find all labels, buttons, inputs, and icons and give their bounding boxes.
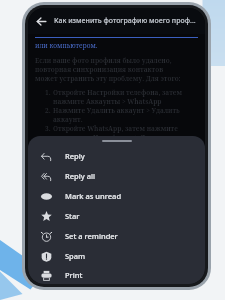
- staticText: Как изменить фотографию моего проф...: [54, 16, 199, 26]
- staticText: Нажмите Удалить аккаунт > Удалить: [53, 106, 180, 115]
- staticText: Если ваше фото профиля было удалено,: [35, 56, 172, 65]
- button[interactable]: Set a reminder: [28, 226, 205, 246]
- staticText: Reply: [65, 151, 85, 161]
- staticText: Print: [65, 270, 83, 280]
- staticText: 2.: [45, 106, 51, 115]
- staticText: на иконку «Новый чат» > Другие: [53, 133, 165, 142]
- staticText: аккаунт, сообщения, контакты: [67, 208, 170, 217]
- staticText: Star: [65, 211, 80, 221]
- staticText: Set a reminder: [65, 231, 118, 241]
- button[interactable]: или компьютером.: [35, 41, 98, 50]
- staticText: 3.: [45, 124, 51, 133]
- button[interactable]: Reply: [28, 146, 205, 166]
- staticText: операционной системы о том, что: [67, 172, 181, 181]
- staticText: Откройте Настройки телефона, затем: [53, 88, 183, 97]
- staticText: 1.: [45, 88, 51, 97]
- button[interactable]: Mark as unread: [28, 186, 205, 206]
- button[interactable]: Spam: [28, 246, 205, 266]
- staticText: Mark as unread: [65, 191, 122, 201]
- staticText: может устранить эту проблему. Для этого:: [35, 74, 181, 83]
- staticText: · Нажав Удалить аккаунт, вы,: [61, 154, 161, 163]
- staticText: Откройте WhatsApp, затем нажмите: [53, 124, 178, 133]
- button[interactable]: Print: [28, 266, 205, 284]
- staticText: нажмите Аккаунты > WhatsApp: [53, 97, 162, 106]
- staticText: данные WhatsApp будут удалены: [67, 190, 178, 199]
- button[interactable]: Reply all: [28, 166, 205, 186]
- staticText: аккаунт.: [53, 115, 83, 124]
- button[interactable]: Star: [28, 206, 205, 226]
- staticText: Reply all: [65, 171, 95, 181]
- button[interactable]: Back: [32, 12, 50, 30]
- staticText: повторная синхронизация контактов: [35, 65, 164, 74]
- staticText: Spam: [65, 251, 86, 261]
